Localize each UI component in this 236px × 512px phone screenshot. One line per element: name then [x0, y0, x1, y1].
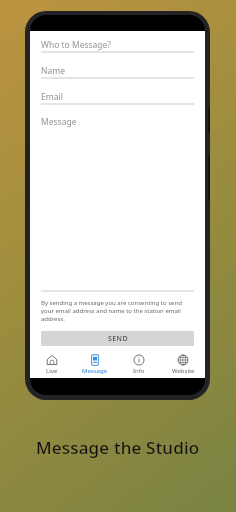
button[interactable]: Message [73, 351, 117, 378]
staticText: Live [46, 367, 58, 375]
button[interactable]: SEND [41, 331, 194, 346]
button[interactable]: Website [161, 351, 205, 378]
button[interactable]: Name [41, 65, 194, 79]
button[interactable]: Message [41, 116, 194, 292]
button[interactable]: Live [30, 351, 73, 378]
staticText: By sending a message you are consenting … [41, 299, 194, 323]
staticText: Who to Message? [41, 39, 112, 50]
button[interactable]: Who to Message? [41, 39, 194, 53]
staticText: Info [133, 367, 145, 375]
staticText: Name [41, 65, 65, 76]
staticText: Website [172, 367, 195, 375]
staticText: Email [41, 91, 63, 102]
staticText: Message [41, 116, 77, 128]
button[interactable]: Email [41, 91, 194, 105]
staticText: Message [82, 367, 108, 375]
staticText: Message the Studio [36, 436, 200, 459]
button[interactable]: Info [117, 351, 161, 378]
staticText: SEND [108, 334, 128, 344]
